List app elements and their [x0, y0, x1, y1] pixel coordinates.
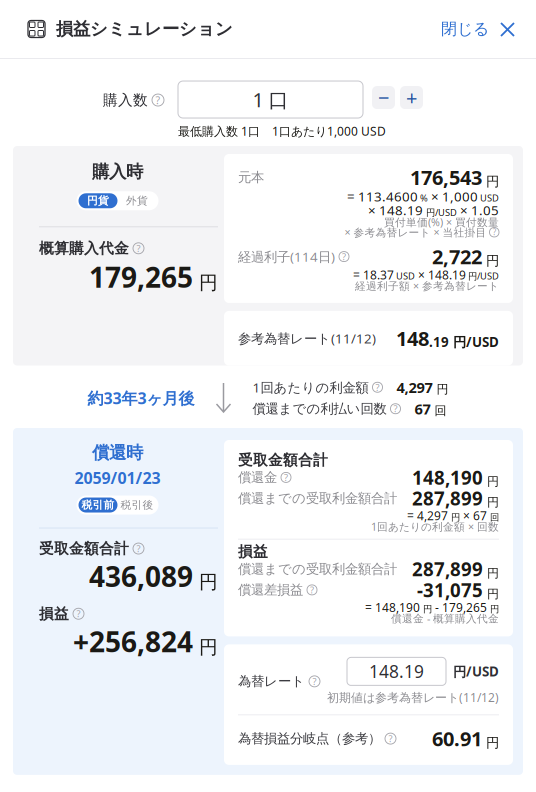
staticText: 148.19 [369, 660, 424, 683]
staticText: 2,722 円 [432, 243, 499, 270]
staticText: 経過利子(114日) [238, 248, 335, 265]
staticText: 4,297 円 [396, 377, 448, 397]
staticText: ? [388, 732, 392, 745]
staticText: 67 回 [414, 399, 446, 418]
staticText: 受取金額合計 [238, 451, 328, 469]
staticText: 436,089 円 [89, 558, 218, 595]
staticText: 購入時 [92, 161, 143, 182]
staticText: ? [284, 471, 288, 484]
staticText: 参考為替レート(11/12) [238, 329, 376, 347]
staticText: × 参考為替レート × 当社掛目 [344, 225, 486, 239]
staticText: 元本 [238, 169, 264, 185]
staticText: + [406, 84, 417, 111]
staticText: 損益シミュレーション [56, 18, 233, 40]
staticText: 60.91 円 [432, 725, 499, 752]
staticText: 為替損益分岐点（参考） [238, 730, 381, 747]
staticText: 円貨 [87, 194, 109, 207]
staticText: 概算購入代金 [39, 239, 129, 257]
staticText: ? [393, 402, 397, 415]
staticText: = 148,190 円 - 179,265 円 [365, 599, 499, 615]
staticText: 為替レート [238, 673, 305, 690]
staticText: 税引後 [120, 498, 153, 512]
staticText: ? [312, 675, 316, 688]
staticText: 2059/01/23 [74, 467, 160, 488]
staticText: 148,190 円 [412, 465, 499, 490]
staticText: ? [136, 542, 140, 555]
button[interactable]: 円貨 [76, 191, 158, 210]
staticText: 初期値は参考為替レート(11/12) [327, 689, 499, 705]
staticText: +256,824 円 [73, 623, 218, 660]
staticText: 外貨 [126, 194, 148, 207]
button[interactable]: 税引前 [76, 495, 158, 514]
staticText: 179,265 円 [89, 258, 218, 295]
staticText: ? [76, 607, 80, 620]
staticText: ? [310, 584, 314, 596]
staticText: 償還までの利払い回数 [252, 401, 386, 417]
staticText: ? [342, 250, 346, 263]
staticText: × 148.19 円/USD × 1.05 [368, 201, 499, 219]
staticText: = 4,297 円 × 67 回 [407, 508, 499, 523]
staticText: 税引前 [81, 498, 114, 512]
staticText: 1 口 [252, 86, 288, 113]
staticText: ? [493, 227, 496, 237]
button[interactable]: 閉じる [441, 9, 536, 49]
staticText: -31,075 円 [417, 577, 499, 602]
staticText: 償還までの受取利金額合計 [238, 490, 397, 506]
staticText: 約33年3ヶ月後 [87, 387, 194, 409]
staticText: ? [155, 93, 160, 107]
staticText: 148.19 円/USD [396, 325, 499, 352]
staticText: = 18.37 USD × 148.19 円/USD [353, 267, 499, 283]
staticText: 償還差損益 [238, 582, 303, 598]
staticText: 償還までの受取利金額合計 [238, 561, 397, 577]
button[interactable]: Increase [400, 86, 423, 109]
staticText: 1回あたりの利金額 [252, 378, 368, 396]
staticText: 買付単価(%) × 買付数量 [384, 215, 499, 229]
staticText: ? [375, 381, 379, 393]
staticText: = 113.4600 % × 1,000 USD [347, 188, 499, 205]
button[interactable]: Decrease [372, 86, 395, 109]
staticText: 償還時 [92, 442, 143, 463]
staticText: − [378, 84, 389, 111]
staticText: 償還金 [238, 469, 277, 486]
staticText: 償還金 - 概算購入代金 [391, 611, 499, 625]
staticText: 経過利子額 × 参考為替レート [355, 279, 499, 293]
staticText: 1回あたりの利金額 × 回数 [371, 519, 499, 534]
staticText: 最低購入数 1口 1口あたり1,000 USD [178, 123, 386, 139]
staticText: 287,899 円 [412, 557, 499, 581]
staticText: 損益 [238, 543, 268, 561]
staticText: 287,899 円 [412, 486, 499, 511]
staticText: 受取金額合計 [39, 539, 129, 557]
staticText: ? [136, 242, 140, 254]
staticText: 損益 [39, 605, 69, 623]
staticText: 円/USD [453, 662, 499, 680]
staticText: 176,543 円 [410, 164, 499, 191]
staticText: 閉じる [441, 19, 489, 39]
staticText: 購入数 [103, 91, 148, 109]
